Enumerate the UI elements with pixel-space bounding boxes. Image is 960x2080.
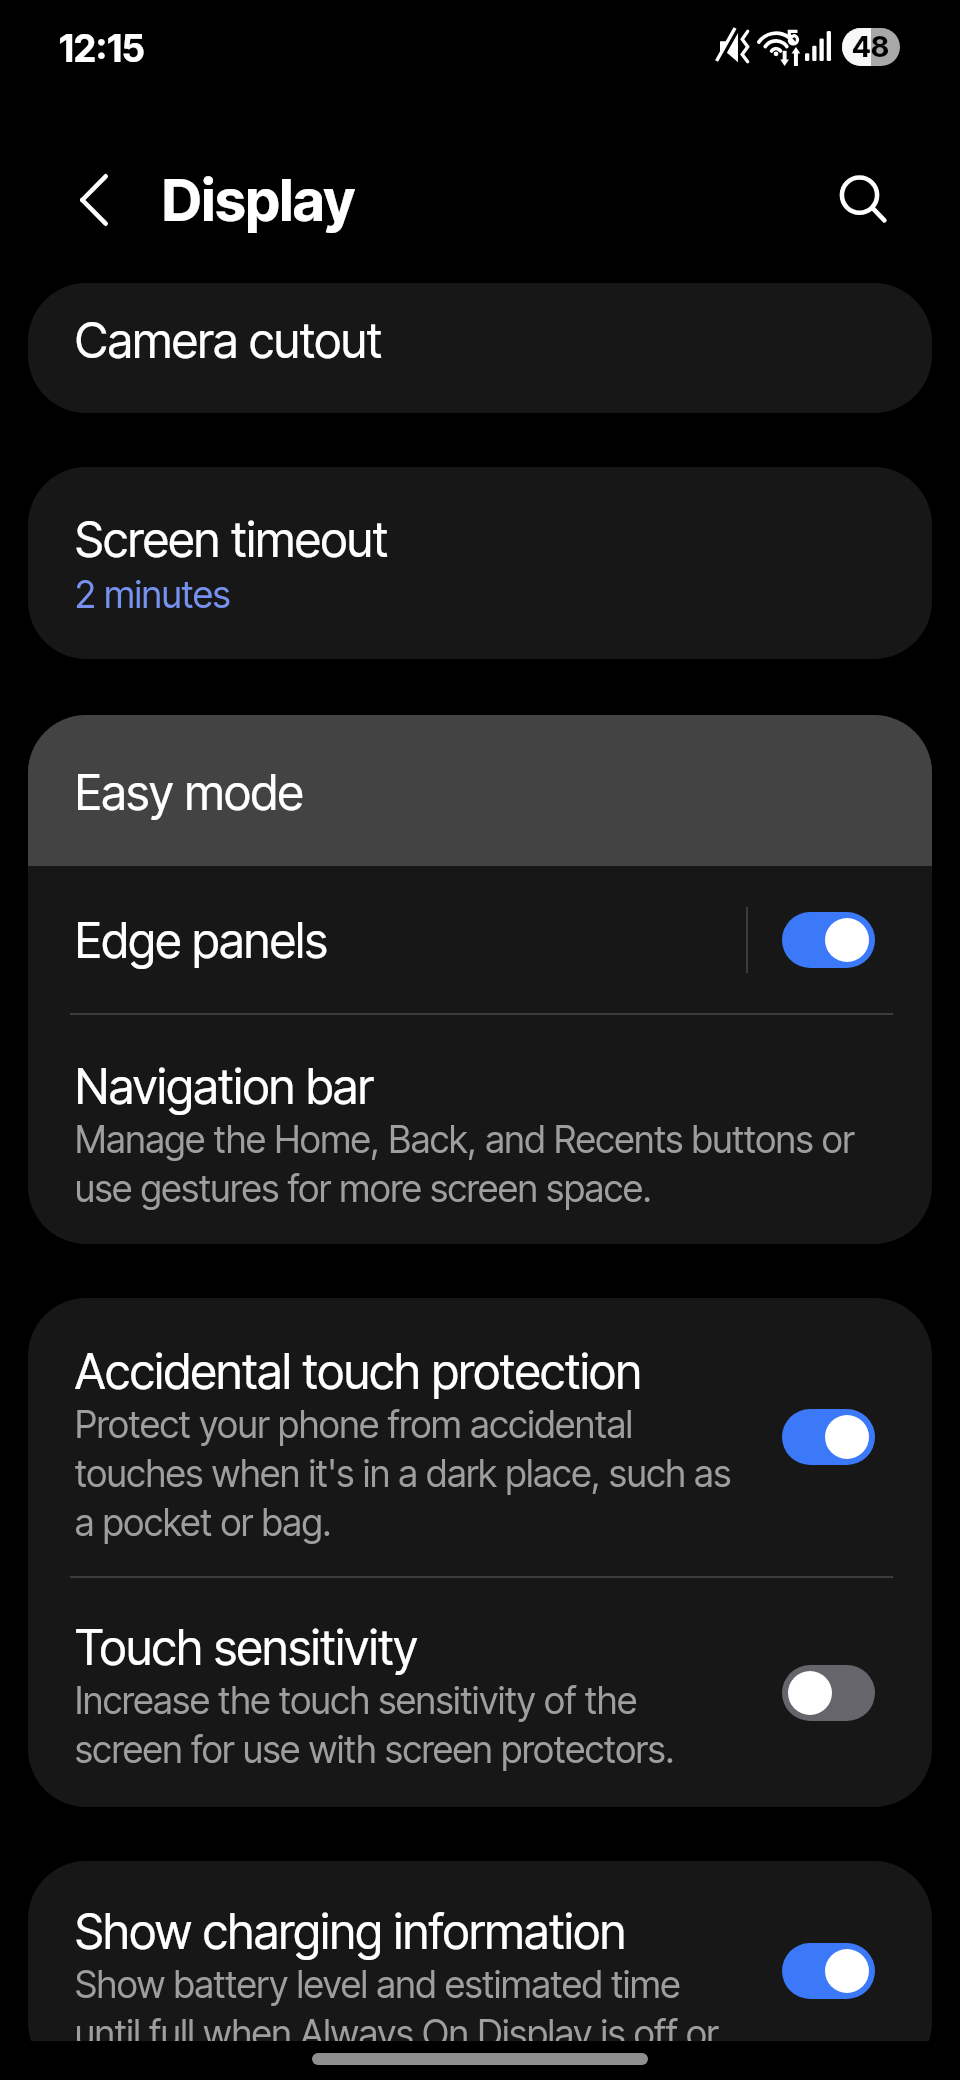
button[interactable]: Edge panels xyxy=(28,866,932,1013)
button[interactable]: Switch on xyxy=(782,912,875,968)
staticText: Display xyxy=(162,166,355,235)
staticText: Touch sensitivity xyxy=(75,1618,418,1676)
staticText: Camera cutout xyxy=(75,311,382,369)
button[interactable]: Search xyxy=(824,160,904,240)
staticText: Show battery level and estimated time un… xyxy=(75,1962,746,2046)
button[interactable]: Easy mode xyxy=(28,715,932,866)
button[interactable]: Switch on xyxy=(782,1943,875,1999)
button[interactable]: Touch sensitivity xyxy=(28,1578,932,1807)
button[interactable]: Switch off xyxy=(782,1665,875,1721)
button[interactable]: Navigate up xyxy=(58,163,130,237)
button[interactable]: Switch on xyxy=(782,1409,875,1465)
button[interactable]: Camera cutout xyxy=(28,283,932,413)
staticText: Manage the Home, Back, and Recents butto… xyxy=(75,1117,872,1211)
button[interactable]: Screen timeout xyxy=(28,467,932,659)
staticText: 12:15 xyxy=(59,26,145,71)
staticText: Protect your phone from accidental touch… xyxy=(75,1402,746,1545)
staticText: Show charging information xyxy=(75,1902,626,1960)
button[interactable]: Show charging information xyxy=(28,1861,932,2080)
staticText: 2 minutes xyxy=(75,572,231,617)
button[interactable]: Navigation bar xyxy=(28,1015,932,1244)
staticText: Screen timeout xyxy=(75,510,388,568)
staticText: Accidental touch protection xyxy=(75,1342,642,1400)
staticText: Navigation bar xyxy=(75,1057,374,1115)
staticText: Increase the touch sensitivity of the sc… xyxy=(75,1678,746,1772)
staticText: Edge panels xyxy=(75,911,793,969)
staticText: 48 xyxy=(852,29,890,64)
staticText: Easy mode xyxy=(75,763,304,821)
button[interactable]: Accidental touch protection xyxy=(28,1298,932,1576)
